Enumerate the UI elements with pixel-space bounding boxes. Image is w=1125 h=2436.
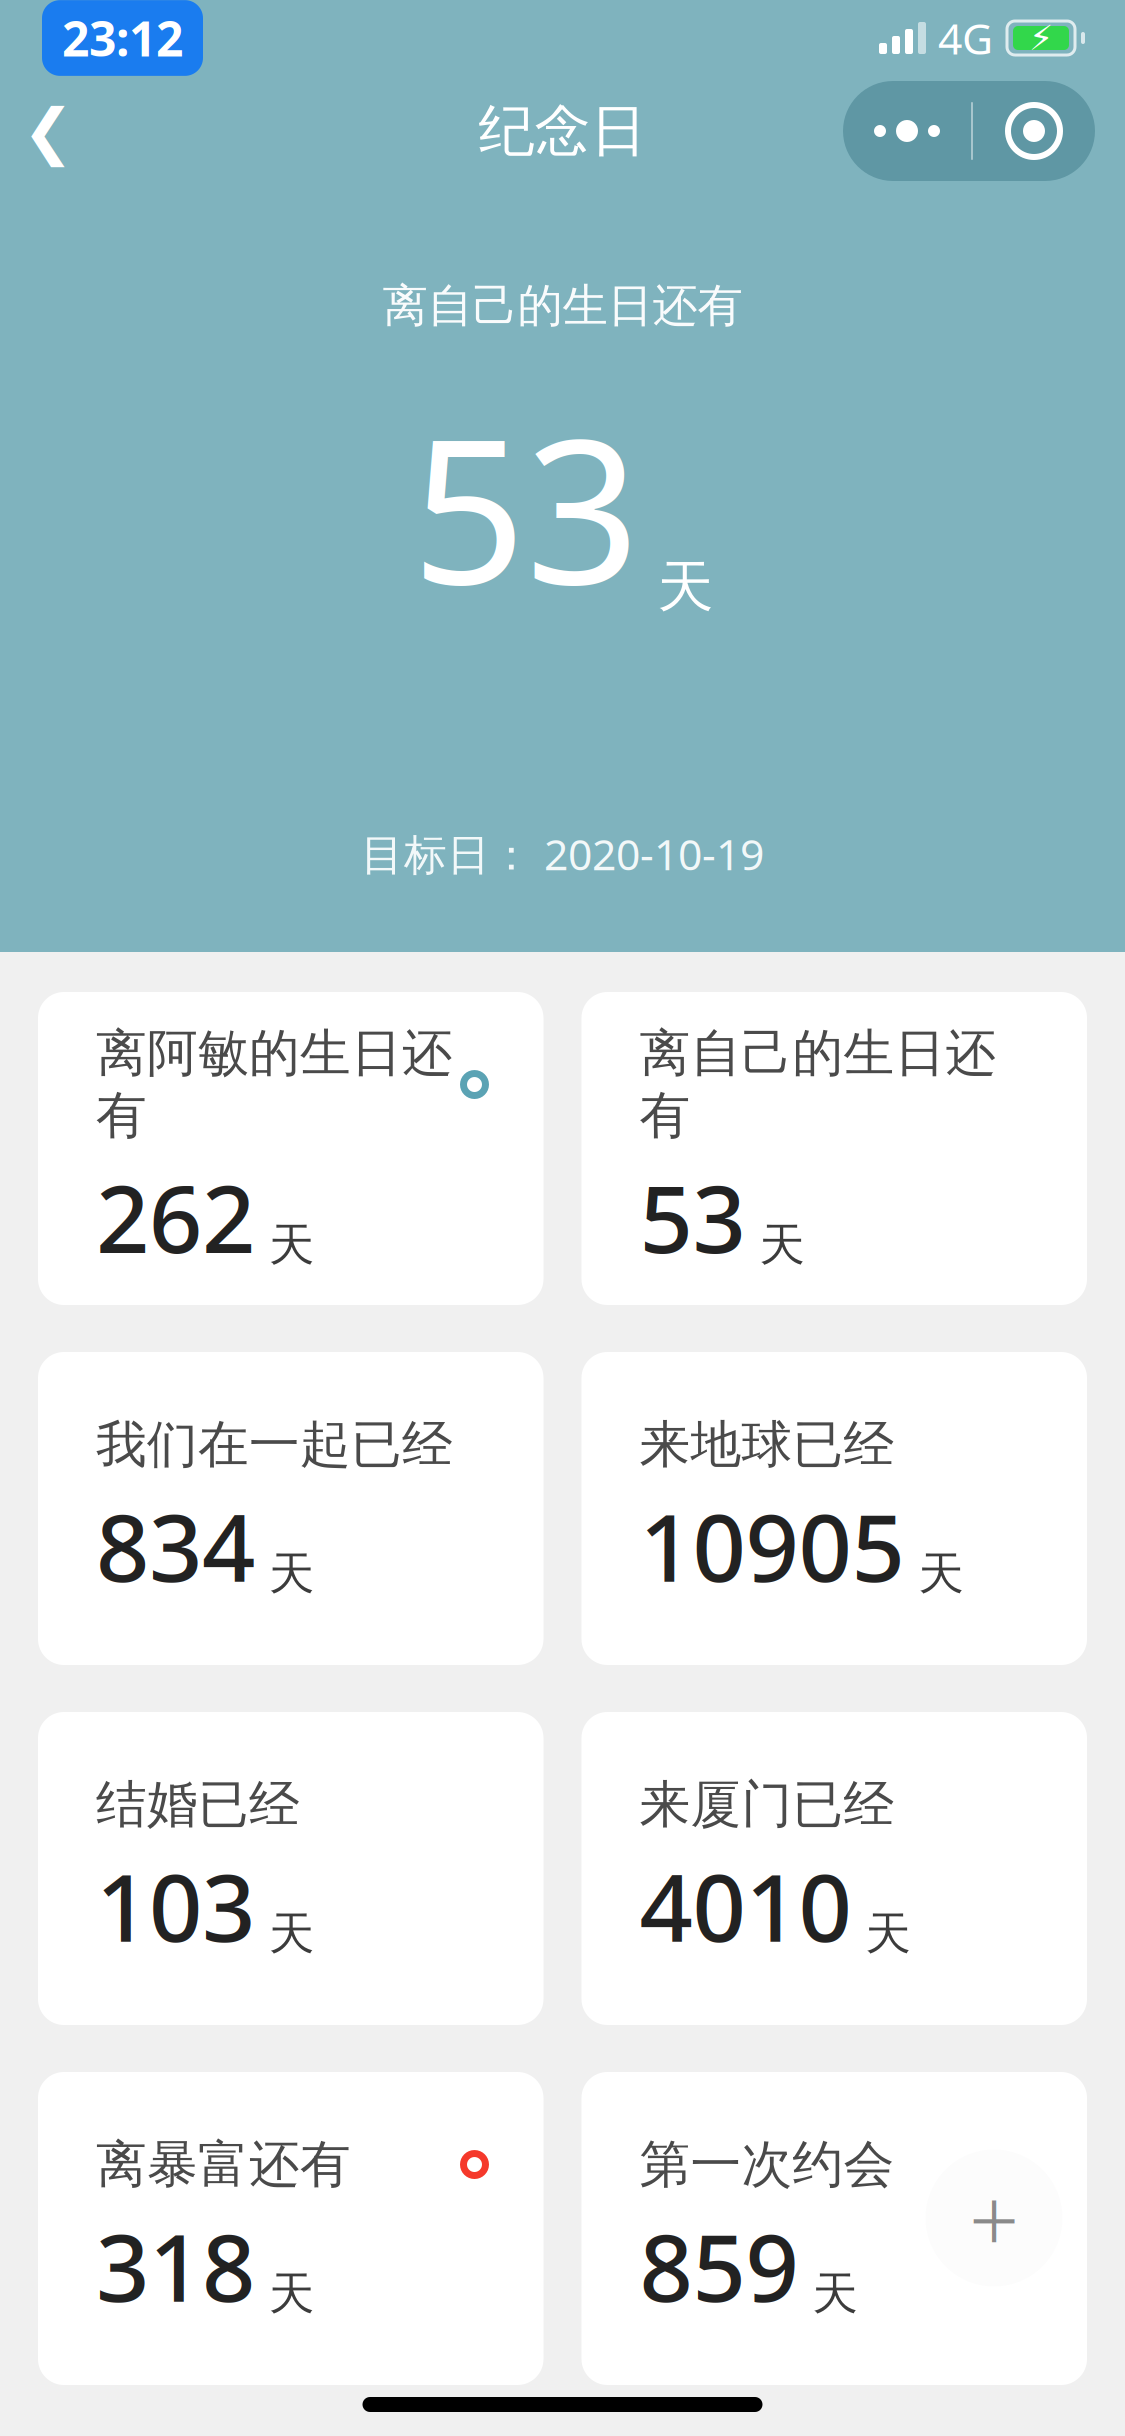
staticText: 4G xyxy=(938,10,993,66)
button[interactable]: Back xyxy=(0,83,96,179)
staticText: 来厦门已经 xyxy=(639,1773,894,1836)
button[interactable]: 离自己的生日还有 xyxy=(581,992,1087,1305)
staticText: 天 xyxy=(269,1217,314,1273)
staticText: 262 xyxy=(96,1155,255,1279)
staticText: 天 xyxy=(269,2266,314,2322)
button[interactable]: 第一次约会 xyxy=(581,2072,1087,2385)
staticText: 4010 xyxy=(639,1844,851,1967)
staticText: 834 xyxy=(96,1484,255,1607)
staticText: 103 xyxy=(96,1844,255,1967)
staticText: 53 xyxy=(639,1155,745,1279)
staticText: 目标日： 2020-10-19 xyxy=(361,825,764,882)
staticText: 纪念日 xyxy=(478,97,646,165)
button[interactable]: 离阿敏的生日还有 xyxy=(38,992,543,1305)
button[interactable]: 离暴富还有 xyxy=(38,2072,543,2385)
staticText: 第一次约会 xyxy=(639,2133,894,2196)
staticText: + xyxy=(969,2160,1019,2276)
staticText: 天 xyxy=(865,1906,910,1962)
button[interactable]: 结婚已经 xyxy=(38,1712,543,2025)
staticText: 318 xyxy=(96,2204,255,2327)
button[interactable]: 我们在一起已经 xyxy=(38,1352,543,1665)
staticText: 我们在一起已经 xyxy=(96,1413,453,1476)
button[interactable]: 来地球已经 xyxy=(581,1352,1087,1665)
staticText: 天 xyxy=(759,1217,804,1273)
staticText: 天 xyxy=(269,1546,314,1602)
staticText: 10905 xyxy=(639,1484,904,1607)
staticText: 离暴富还有 xyxy=(96,2133,351,2196)
button[interactable]: More options and record xyxy=(843,81,1095,181)
staticText: 53 xyxy=(411,374,639,639)
staticText: 天 xyxy=(657,552,713,621)
staticText: 天 xyxy=(269,1906,314,1962)
staticText: 离阿敏的生日还有 xyxy=(96,1022,453,1147)
staticText: 859 xyxy=(639,2204,798,2327)
staticText: 结婚已经 xyxy=(96,1773,300,1836)
staticText: ⚡︎ xyxy=(1029,18,1053,58)
staticText: 来地球已经 xyxy=(639,1413,894,1476)
staticText: 离自己的生日还有 xyxy=(639,1022,996,1147)
staticText: 离自己的生日还有 xyxy=(382,278,742,334)
staticText: 23:12 xyxy=(62,6,183,70)
staticText: ❮ xyxy=(22,96,73,166)
button[interactable]: 来厦门已经 xyxy=(581,1712,1087,2025)
button[interactable]: Add anniversary xyxy=(919,2143,1069,2293)
staticText: 天 xyxy=(812,2266,857,2322)
staticText: 天 xyxy=(918,1546,963,1602)
